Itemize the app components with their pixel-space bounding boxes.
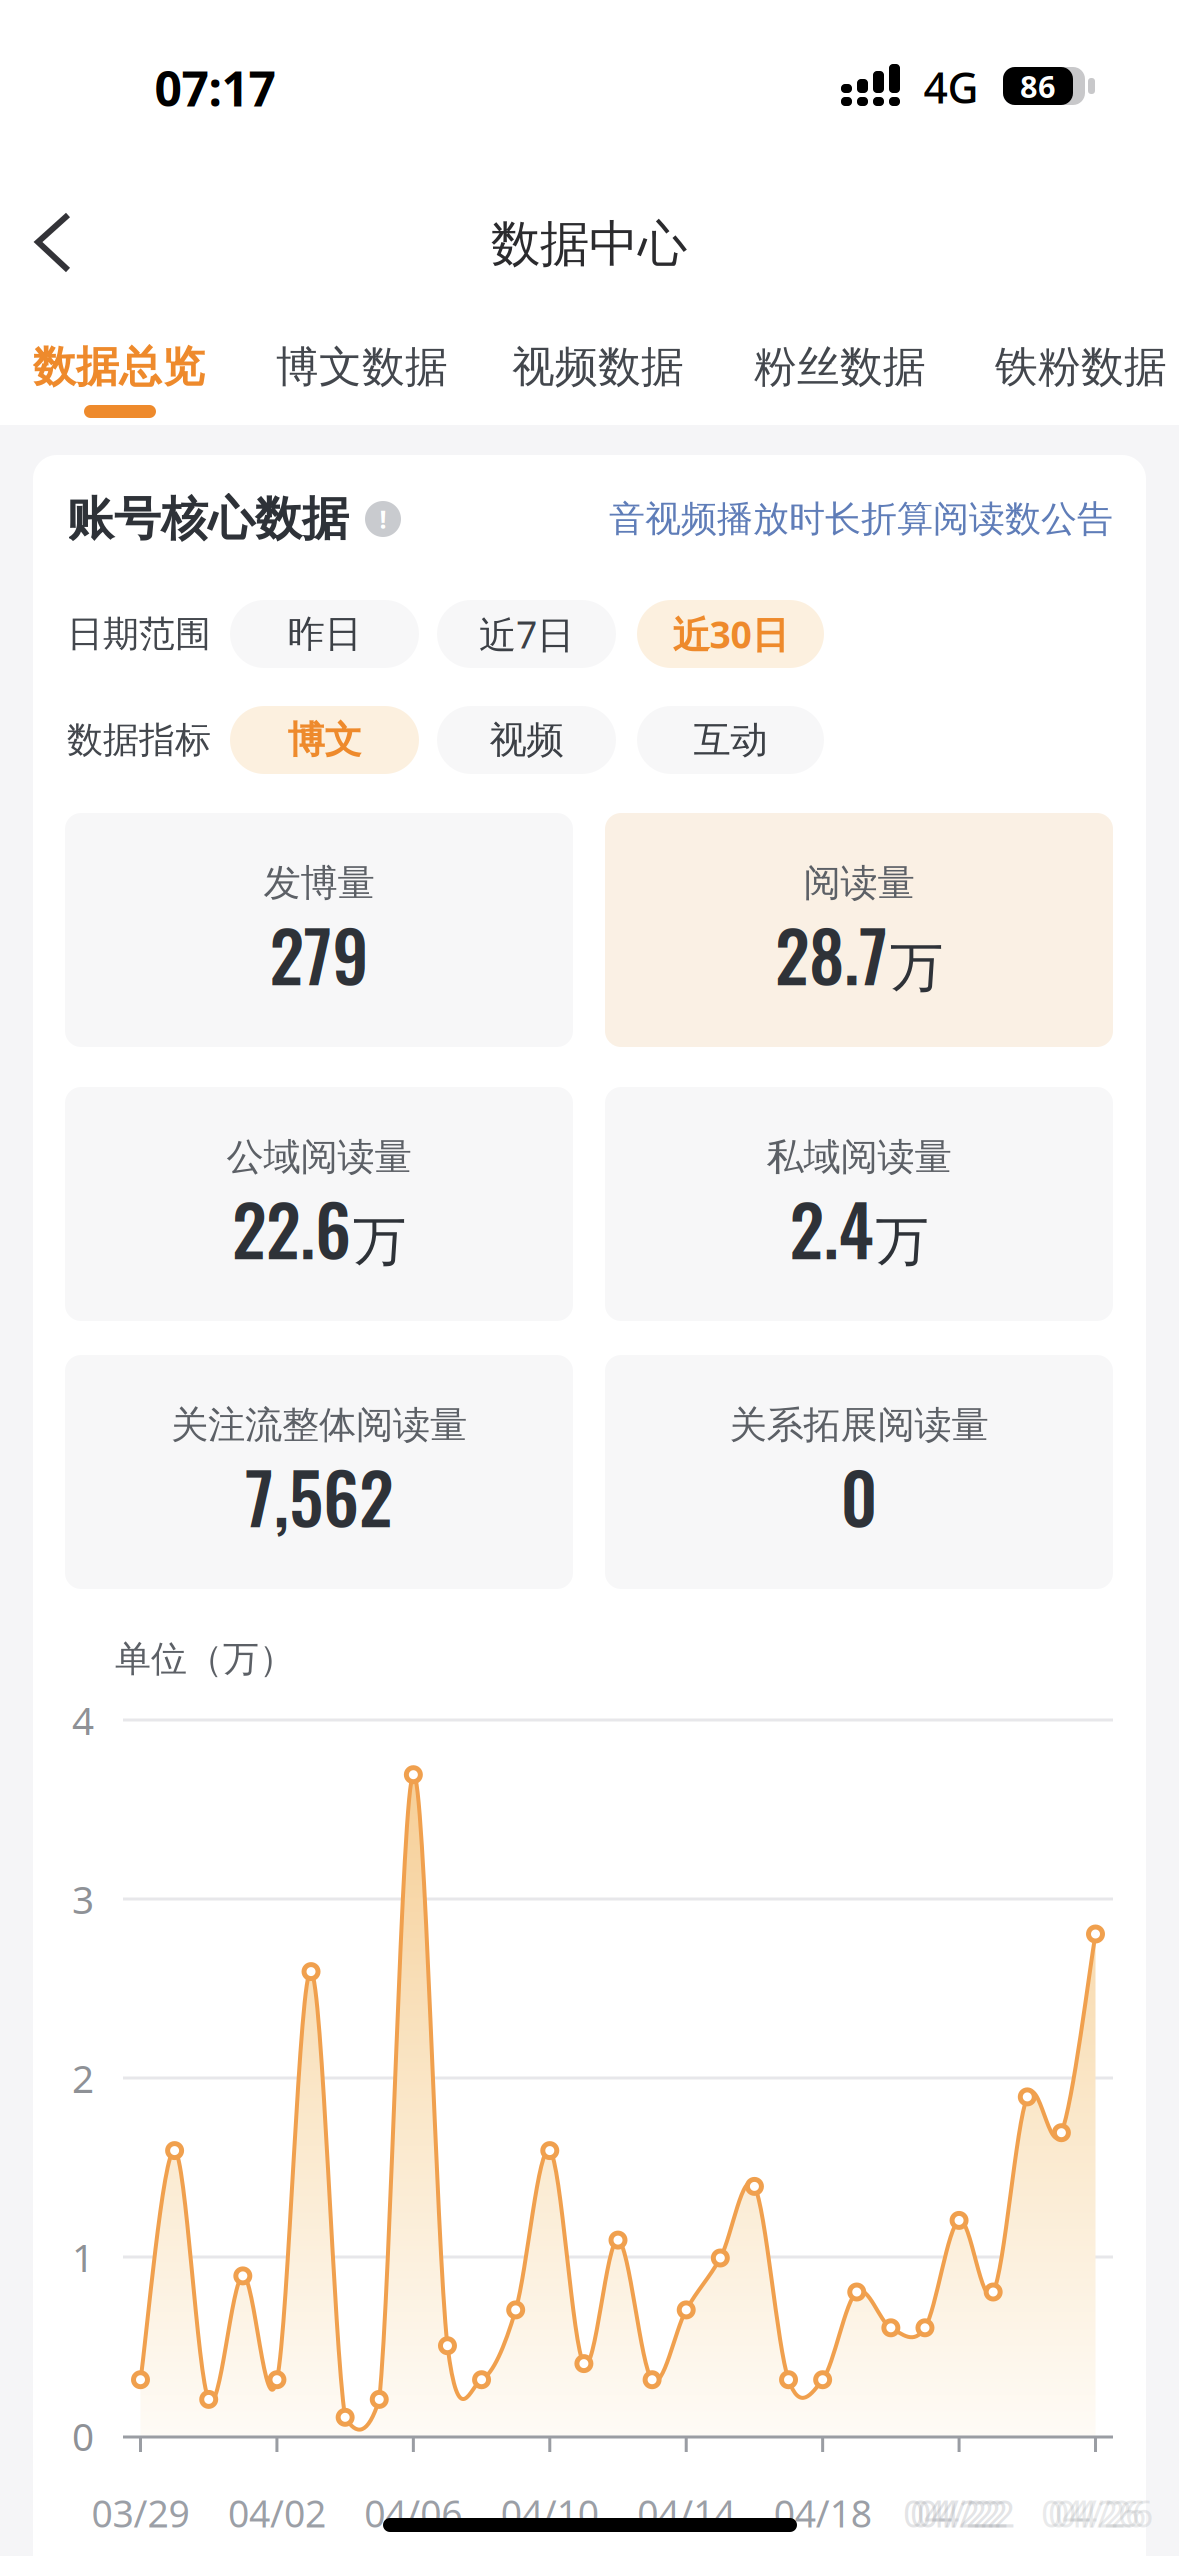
staticText: 07:17 xyxy=(154,56,275,120)
staticText: 28.7 xyxy=(775,903,888,1005)
staticText: 博文 xyxy=(287,717,361,763)
staticText: 粉丝数据 xyxy=(754,341,926,393)
button[interactable]: 昨日 xyxy=(230,600,419,668)
button[interactable]: 博文数据 xyxy=(276,341,448,393)
button[interactable]: 关系拓展阅读量 xyxy=(605,1355,1113,1589)
staticText: 3 xyxy=(72,1873,94,1925)
staticText: 公域阅读量 xyxy=(226,1134,411,1180)
staticText: 账号核心数据 xyxy=(67,490,349,548)
button[interactable]: 粉丝数据 xyxy=(754,341,926,393)
staticText: 私域阅读量 xyxy=(766,1134,951,1180)
staticText: 日期范围 xyxy=(67,612,211,656)
staticText: 0 xyxy=(840,1445,877,1547)
staticText: 关注流整体阅读量 xyxy=(171,1402,467,1448)
staticText: 关系拓展阅读量 xyxy=(729,1402,988,1448)
staticText: ! xyxy=(379,502,386,536)
staticText: 04/22 xyxy=(903,2488,1001,2538)
staticText: 22.6 xyxy=(232,1177,351,1279)
staticText: 04/06 xyxy=(364,2488,462,2538)
staticText: 万 xyxy=(353,1209,406,1274)
staticText: 04/26 xyxy=(1048,2488,1146,2538)
button[interactable]: 近7日 xyxy=(437,600,616,668)
button[interactable]: 私域阅读量 xyxy=(605,1087,1113,1321)
staticText: 0 xyxy=(72,2410,94,2462)
staticText: 视频 xyxy=(489,717,563,763)
staticText: 04/10 xyxy=(501,2488,599,2538)
staticText: 04/26 xyxy=(1055,2488,1153,2538)
staticText: 互动 xyxy=(693,717,767,763)
staticText: 发博量 xyxy=(263,860,374,906)
staticText: 万 xyxy=(890,935,943,1000)
staticText: 04/22 xyxy=(910,2488,1008,2538)
staticText: 7,562 xyxy=(245,1445,393,1547)
staticText: 04/18 xyxy=(774,2488,872,2538)
staticText: 04/14 xyxy=(637,2488,735,2538)
button[interactable]: 发博量 xyxy=(65,813,573,1047)
button[interactable]: 近30日 xyxy=(637,600,824,668)
staticText: 04/22 xyxy=(917,2488,1015,2538)
button[interactable]: 博文 xyxy=(230,706,419,774)
staticText: 单位（万） xyxy=(115,1637,295,1681)
button[interactable]: 公域阅读量 xyxy=(65,1087,573,1321)
staticText: 近7日 xyxy=(479,609,574,659)
staticText: 2.4 xyxy=(789,1177,873,1279)
staticText: 数据指标 xyxy=(67,718,211,762)
staticText: 音视频播放时长折算阅读数公告 xyxy=(609,497,1113,541)
button[interactable]: 关注流整体阅读量 xyxy=(65,1355,573,1589)
staticText: 04/02 xyxy=(228,2488,326,2538)
staticText: 2 xyxy=(72,2052,94,2104)
staticText: 04/26 xyxy=(1041,2488,1139,2538)
staticText: 数据中心 xyxy=(491,214,687,274)
button[interactable]: 视频数据 xyxy=(512,341,684,393)
staticText: 万 xyxy=(875,1209,928,1274)
staticText: 博文数据 xyxy=(276,341,448,393)
staticText: 昨日 xyxy=(287,611,361,657)
button[interactable]: 互动 xyxy=(637,706,824,774)
button[interactable]: 阅读量 xyxy=(605,813,1113,1047)
staticText: 1 xyxy=(72,2231,94,2283)
button[interactable]: 数据总览 xyxy=(33,341,205,393)
staticText: 数据总览 xyxy=(33,341,205,393)
staticText: 86 xyxy=(1020,66,1056,106)
staticText: 铁粉数据 xyxy=(995,341,1167,393)
staticText: 近30日 xyxy=(672,609,788,659)
staticText: 03/29 xyxy=(91,2488,189,2538)
button[interactable] xyxy=(0,0,1179,2556)
button[interactable]: 音视频播放时长折算阅读数公告 xyxy=(609,497,1113,541)
staticText: 279 xyxy=(269,903,368,1005)
button[interactable]: 铁粉数据 xyxy=(995,341,1167,393)
staticText: 4G xyxy=(923,59,978,115)
staticText: 视频数据 xyxy=(512,341,684,393)
staticText: 4 xyxy=(72,1694,94,1746)
staticText: 阅读量 xyxy=(803,860,914,906)
button[interactable]: 视频 xyxy=(437,706,616,774)
